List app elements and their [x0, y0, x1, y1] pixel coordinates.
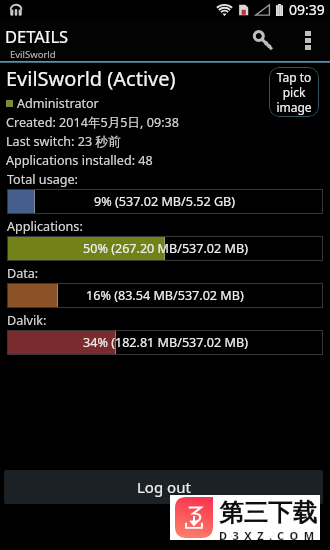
button[interactable]: Log out [4, 470, 323, 504]
staticText: 16% (83.54 MB/537.02 MB) [86, 287, 244, 304]
button[interactable]: More options [285, 19, 330, 61]
staticText: EvilSworld (Active) [6, 65, 176, 92]
staticText: 9% (537.02 MB/5.52 GB) [94, 193, 236, 210]
staticText: Last switch: 23 秒前 [6, 133, 121, 150]
staticText: Applications installed: 48 [6, 152, 153, 169]
staticText: EvilSworld [10, 48, 56, 61]
staticText: 50% (267.20 MB/537.02 MB) [83, 240, 248, 257]
staticText: Applications: [7, 218, 83, 235]
staticText: Tap to pick image [269, 69, 319, 115]
staticText: Data: [7, 265, 39, 282]
staticText: Dalvik: [7, 312, 47, 329]
staticText: Administrator [17, 95, 99, 112]
button[interactable]: Password [241, 19, 285, 61]
staticText: 34% (182.81 MB/537.02 MB) [83, 334, 248, 351]
staticText: D3XZ.COM [219, 528, 320, 542]
staticText: 第三下载 [219, 497, 317, 528]
button[interactable]: Tap to pick image [269, 67, 319, 117]
staticText: Log out [137, 477, 191, 497]
staticText: Total usage: [7, 171, 78, 188]
staticText: Created: 2014年5月5日, 09:38 [6, 114, 179, 131]
staticText: 09:39 [289, 0, 325, 19]
staticText: DETAILS [5, 25, 69, 47]
